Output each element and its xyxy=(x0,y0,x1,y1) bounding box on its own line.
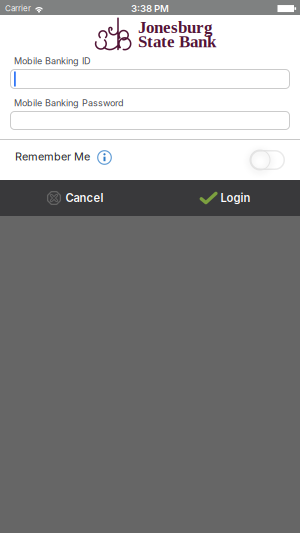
staticText: Login xyxy=(220,191,250,205)
button[interactable]: Cancel xyxy=(0,180,150,216)
staticText: Cancel xyxy=(65,191,103,205)
button[interactable]: Remember Me toggle xyxy=(249,149,285,171)
button[interactable]: Mobile Banking ID text field xyxy=(10,69,290,89)
staticText: State Bank xyxy=(138,32,216,51)
staticText: Remember Me xyxy=(15,150,90,163)
staticText: Jonesburg xyxy=(138,18,212,37)
button[interactable]: Login xyxy=(150,180,300,216)
button[interactable]: More info about Remember Me xyxy=(97,150,112,165)
staticText: Mobile Banking ID xyxy=(14,55,91,66)
staticText: Carrier xyxy=(5,3,31,13)
staticText: 3:38 PM xyxy=(131,3,169,14)
staticText: Mobile Banking Password xyxy=(14,97,124,108)
button[interactable]: Mobile Banking Password text field xyxy=(10,111,290,130)
